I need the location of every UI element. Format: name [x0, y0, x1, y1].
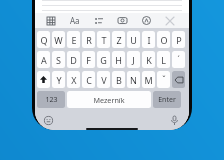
button[interactable]: B [112, 71, 125, 88]
button[interactable]: S [52, 51, 65, 68]
button[interactable]: W [52, 31, 65, 48]
button[interactable]: Backspace [172, 71, 185, 88]
staticText: ´ [177, 54, 180, 65]
button[interactable]: J [127, 51, 140, 68]
staticText: ˇ [162, 74, 166, 85]
button[interactable]: ˇ [157, 71, 170, 88]
staticText: O [160, 34, 168, 46]
staticText: E [71, 34, 77, 46]
staticText: K [146, 54, 152, 66]
button[interactable]: Y [52, 71, 65, 88]
staticText: Y [56, 74, 62, 86]
staticText: D [70, 54, 77, 66]
staticText: Mezerník [93, 95, 125, 105]
staticText: I [147, 34, 151, 46]
staticText: T [101, 34, 107, 46]
button[interactable]: H [112, 51, 125, 68]
button[interactable]: O [157, 31, 170, 48]
button[interactable]: Close keyboard [163, 14, 176, 27]
staticText: C [86, 74, 92, 86]
staticText: H [115, 54, 122, 66]
staticText: A [41, 54, 47, 66]
button[interactable]: C [82, 71, 95, 88]
staticText: Q [40, 34, 48, 46]
button[interactable]: 123 [37, 91, 65, 108]
button[interactable]: R [82, 31, 95, 48]
button[interactable]: Markup [140, 14, 153, 27]
staticText: L [161, 54, 166, 66]
staticText: R [86, 34, 92, 46]
staticText: P [176, 34, 182, 46]
button[interactable]: Mezerník [67, 91, 151, 108]
button[interactable]: Text format [68, 14, 81, 27]
button[interactable]: ´ [172, 51, 185, 68]
button[interactable]: I [142, 31, 155, 48]
button[interactable]: Checklist [92, 14, 105, 27]
staticText: F [86, 54, 91, 66]
button[interactable]: K [142, 51, 155, 68]
staticText: Enter [158, 95, 176, 105]
button[interactable]: Emoji [42, 114, 55, 127]
staticText: S [56, 54, 61, 66]
staticText: N [130, 74, 137, 86]
button[interactable]: U [127, 31, 140, 48]
staticText: U [130, 34, 137, 46]
staticText: V [101, 74, 107, 86]
button[interactable]: G [97, 51, 110, 68]
button[interactable]: M [142, 71, 155, 88]
button[interactable]: L [157, 51, 170, 68]
button[interactable]: Shift [37, 71, 50, 88]
staticText: M [144, 74, 153, 86]
staticText: B [116, 74, 122, 86]
button[interactable]: A [37, 51, 50, 68]
button[interactable]: Q [37, 31, 50, 48]
button[interactable]: Enter [153, 91, 181, 108]
staticText: G [100, 54, 107, 66]
staticText: J [132, 54, 135, 66]
staticText: W [54, 34, 63, 46]
staticText: X [71, 74, 77, 86]
staticText: 123 [45, 95, 58, 105]
staticText: Aa [70, 15, 80, 26]
button[interactable]: F [82, 51, 95, 68]
button[interactable]: V [97, 71, 110, 88]
button[interactable]: E [67, 31, 80, 48]
staticText: Z [116, 34, 122, 46]
button[interactable]: Dictate [168, 114, 181, 127]
button[interactable]: P [172, 31, 185, 48]
button[interactable]: T [97, 31, 110, 48]
button[interactable]: D [67, 51, 80, 68]
button[interactable]: Z [112, 31, 125, 48]
button[interactable]: Camera [116, 14, 129, 27]
button[interactable]: N [127, 71, 140, 88]
button[interactable]: X [67, 71, 80, 88]
button[interactable]: Insert table [44, 14, 57, 27]
